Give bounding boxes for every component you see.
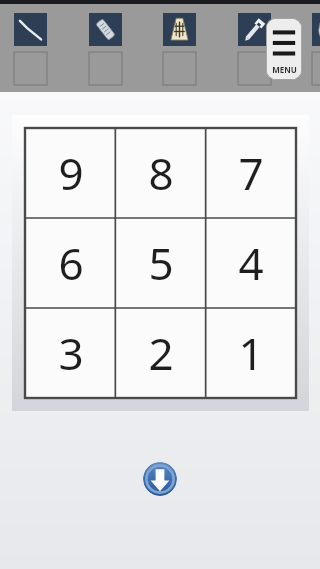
button[interactable]: 9 (25, 128, 116, 218)
button[interactable]: Menu (266, 18, 302, 80)
button[interactable]: 8 (116, 128, 206, 218)
button[interactable]: 1 (206, 308, 296, 398)
button[interactable]: 3 (25, 308, 116, 398)
staticText: 5 (148, 233, 174, 293)
button[interactable]: 2 (116, 308, 206, 398)
staticText: 8 (148, 143, 174, 203)
staticText: MENU (272, 64, 297, 75)
button[interactable]: Empty item slot (312, 52, 320, 85)
staticText: 4 (238, 233, 264, 293)
button[interactable]: Scroll down (143, 462, 177, 496)
button[interactable]: 7 (206, 128, 296, 218)
button[interactable]: Empty item slot (238, 52, 271, 85)
button[interactable]: Key tool (238, 13, 271, 46)
button[interactable]: Empty item slot (89, 52, 122, 85)
button[interactable]: 5 (116, 218, 206, 308)
button[interactable]: 6 (25, 218, 116, 308)
button[interactable]: 4 (206, 218, 296, 308)
button[interactable]: Remote control (89, 13, 122, 46)
button[interactable]: Bent rod (14, 13, 47, 46)
button[interactable]: Stone tablet (163, 13, 196, 46)
button[interactable]: Empty item slot (14, 52, 47, 85)
staticText: 3 (58, 323, 84, 383)
staticText: 1 (238, 323, 264, 383)
staticText: 7 (238, 143, 264, 203)
button[interactable]: Empty item slot (163, 52, 196, 85)
staticText: 6 (58, 233, 84, 293)
staticText: 2 (148, 323, 174, 383)
button[interactable]: Paper bag (312, 13, 320, 46)
staticText: 9 (58, 143, 84, 203)
